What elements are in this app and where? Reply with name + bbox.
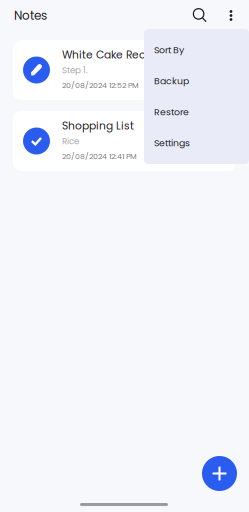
- staticText: Settings: [154, 136, 190, 150]
- button[interactable]: Sort By: [144, 34, 249, 65]
- staticText: Rice: [62, 135, 79, 147]
- button[interactable]: Backup: [144, 65, 249, 96]
- button[interactable]: Shopping List: [13, 111, 236, 171]
- button[interactable]: Search: [189, 4, 211, 26]
- staticText: 20/08/2024 12:52 PM: [62, 80, 139, 91]
- button[interactable]: More options: [220, 4, 242, 26]
- staticText: 20/08/2024 12:41 PM: [62, 151, 137, 162]
- staticText: White Cake Recipe: [62, 47, 162, 62]
- staticText: Backup: [154, 74, 189, 88]
- button[interactable]: Restore: [144, 96, 249, 127]
- button[interactable]: White Cake Recipe: [13, 40, 236, 100]
- staticText: Shopping List: [62, 118, 134, 133]
- staticText: Step 1.: [62, 64, 88, 76]
- button[interactable]: New note: [202, 456, 237, 491]
- button[interactable]: Settings: [144, 127, 249, 158]
- staticText: Restore: [154, 105, 189, 119]
- staticText: Sort By: [154, 43, 184, 57]
- staticText: Notes: [14, 7, 47, 24]
